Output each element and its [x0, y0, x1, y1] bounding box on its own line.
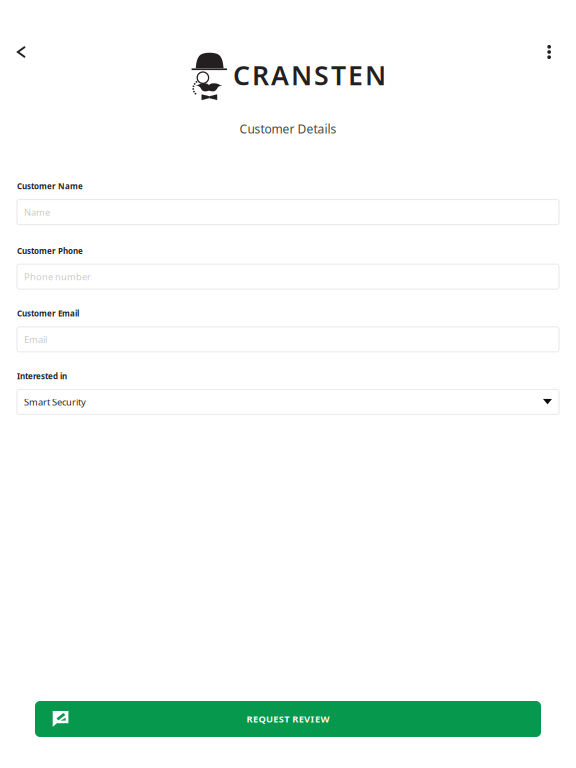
staticText: CRANSTEN — [233, 57, 386, 93]
button[interactable]: Back — [0, 0, 45, 74]
staticText: Name — [24, 206, 50, 218]
staticText: Customer Details — [239, 121, 336, 137]
staticText: Customer Email — [17, 308, 79, 319]
staticText: Smart Security — [24, 396, 86, 408]
staticText: Customer Phone — [17, 246, 83, 256]
staticText: REQUEST REVIEW — [247, 713, 329, 725]
button[interactable]: Phone number — [17, 264, 559, 289]
staticText: Email — [24, 333, 47, 345]
button[interactable]: REQUEST REVIEW — [35, 701, 541, 737]
button[interactable]: Smart Security — [17, 389, 559, 414]
button[interactable]: Name — [17, 200, 559, 225]
button[interactable]: More options — [526, 0, 576, 74]
staticText: Customer Name — [17, 181, 83, 191]
staticText: Interested in — [17, 371, 67, 381]
staticText: Phone number — [24, 270, 91, 283]
button[interactable]: Email — [17, 327, 559, 352]
